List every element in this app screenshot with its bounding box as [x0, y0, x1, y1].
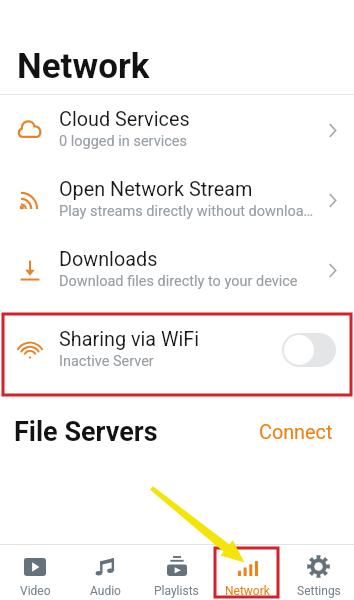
button[interactable]: Sharing via WiFi — [0, 305, 354, 395]
button[interactable]: Downloads — [0, 235, 354, 305]
staticText: Open Network Stream — [59, 178, 253, 201]
staticText: Download files directly to your device — [59, 273, 298, 290]
staticText: Play streams directly without download… — [59, 203, 318, 220]
button[interactable]: Video — [0, 545, 70, 600]
staticText: File Servers — [14, 416, 158, 448]
staticText: Inactive Server — [59, 353, 154, 370]
staticText: Network — [225, 584, 270, 598]
button[interactable]: Playlists — [141, 545, 212, 600]
button[interactable]: Cloud Services — [0, 95, 354, 165]
button[interactable]: Network — [212, 545, 283, 600]
staticText: Network — [17, 46, 150, 87]
button[interactable]: Settings — [283, 545, 354, 600]
staticText: Playlists — [154, 584, 199, 598]
staticText: Downloads — [59, 248, 158, 271]
staticText: Cloud Services — [59, 108, 190, 131]
staticText: Video — [20, 584, 51, 598]
staticText: 0 logged in services — [59, 133, 187, 150]
staticText: Sharing via WiFi — [59, 328, 200, 351]
staticText: Settings — [297, 584, 341, 598]
button[interactable]: Audio — [70, 545, 141, 600]
staticText: Audio — [90, 584, 121, 598]
button[interactable]: Open Network Stream — [0, 165, 354, 235]
button[interactable]: Connect — [254, 417, 338, 448]
button[interactable]: Toggle WiFi sharing — [282, 333, 336, 367]
staticText: Connect — [259, 421, 333, 444]
